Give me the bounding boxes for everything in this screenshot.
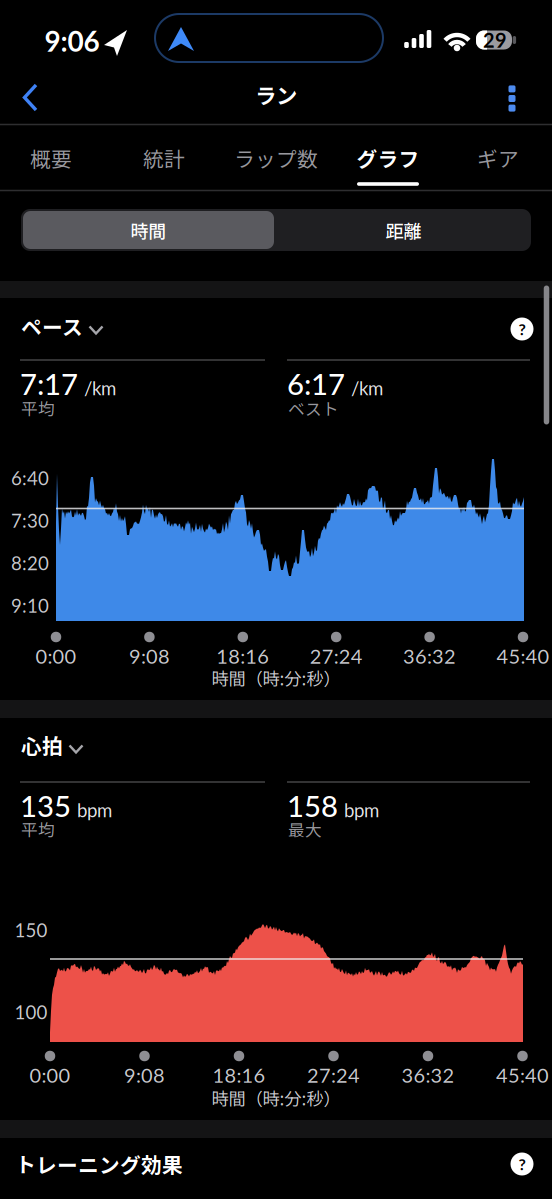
- staticText: 9:10: [11, 594, 49, 617]
- button[interactable]: 統計: [143, 126, 185, 190]
- staticText: /km: [84, 377, 116, 399]
- button[interactable]: Help: [510, 317, 533, 340]
- button[interactable]: ラップ数: [234, 126, 318, 190]
- staticText: ギア: [477, 143, 519, 173]
- staticText: 27:24: [307, 1063, 360, 1087]
- staticText: 平均: [21, 817, 55, 841]
- staticText: 時間（時:分:秒）: [211, 1085, 340, 1111]
- staticText: 7:17: [20, 366, 78, 401]
- button[interactable]: グラフ: [356, 126, 419, 190]
- button[interactable]: ギア: [477, 126, 519, 190]
- staticText: 時間（時:分:秒）: [211, 665, 340, 691]
- button[interactable]: Help: [510, 1152, 533, 1175]
- staticText: 統計: [143, 143, 185, 173]
- staticText: 距離: [385, 217, 421, 243]
- staticText: ?: [518, 1154, 525, 1174]
- staticText: グラフ: [356, 143, 419, 173]
- staticText: 心拍: [21, 730, 63, 760]
- staticText: 18:16: [216, 644, 269, 668]
- staticText: 7:30: [11, 509, 49, 532]
- staticText: bpm: [77, 799, 112, 821]
- staticText: トレーニング効果: [15, 1149, 183, 1179]
- staticText: ペース: [21, 311, 83, 341]
- staticText: ラップ数: [234, 143, 318, 173]
- staticText: 36:32: [401, 1063, 454, 1087]
- staticText: 27:24: [310, 644, 363, 668]
- staticText: 8:20: [11, 552, 49, 574]
- staticText: ベスト: [288, 396, 339, 420]
- button[interactable]: ペース: [0, 311, 103, 341]
- button[interactable]: 距離: [278, 211, 529, 249]
- staticText: 9:08: [124, 1063, 165, 1087]
- staticText: ?: [518, 319, 525, 339]
- staticText: 9:08: [129, 644, 170, 668]
- staticText: 45:40: [496, 644, 549, 668]
- staticText: ラン: [255, 79, 297, 110]
- staticText: 100: [14, 1001, 47, 1023]
- staticText: 18:16: [212, 1063, 265, 1087]
- staticText: 150: [14, 919, 47, 941]
- button[interactable]: 心拍: [0, 730, 83, 760]
- staticText: 0:00: [29, 1063, 70, 1087]
- staticText: bpm: [344, 799, 379, 821]
- button[interactable]: 時間: [23, 211, 274, 249]
- staticText: 36:32: [403, 644, 456, 668]
- staticText: 0:00: [35, 644, 76, 668]
- button[interactable]: More options: [492, 73, 532, 123]
- staticText: 45:40: [496, 1063, 549, 1087]
- staticText: 135: [20, 788, 71, 823]
- staticText: 158: [287, 788, 338, 823]
- staticText: 平均: [21, 396, 55, 420]
- staticText: 29: [483, 28, 507, 52]
- button[interactable]: トレーニング効果: [0, 1149, 183, 1179]
- staticText: 9:06: [44, 24, 99, 58]
- button[interactable]: Back: [8, 70, 52, 124]
- button[interactable]: 概要: [30, 126, 72, 190]
- staticText: 6:17: [287, 366, 345, 401]
- staticText: 概要: [30, 143, 72, 173]
- staticText: 時間: [130, 217, 166, 243]
- staticText: 最大: [288, 817, 322, 841]
- staticText: 6:40: [11, 467, 49, 489]
- staticText: /km: [351, 377, 383, 399]
